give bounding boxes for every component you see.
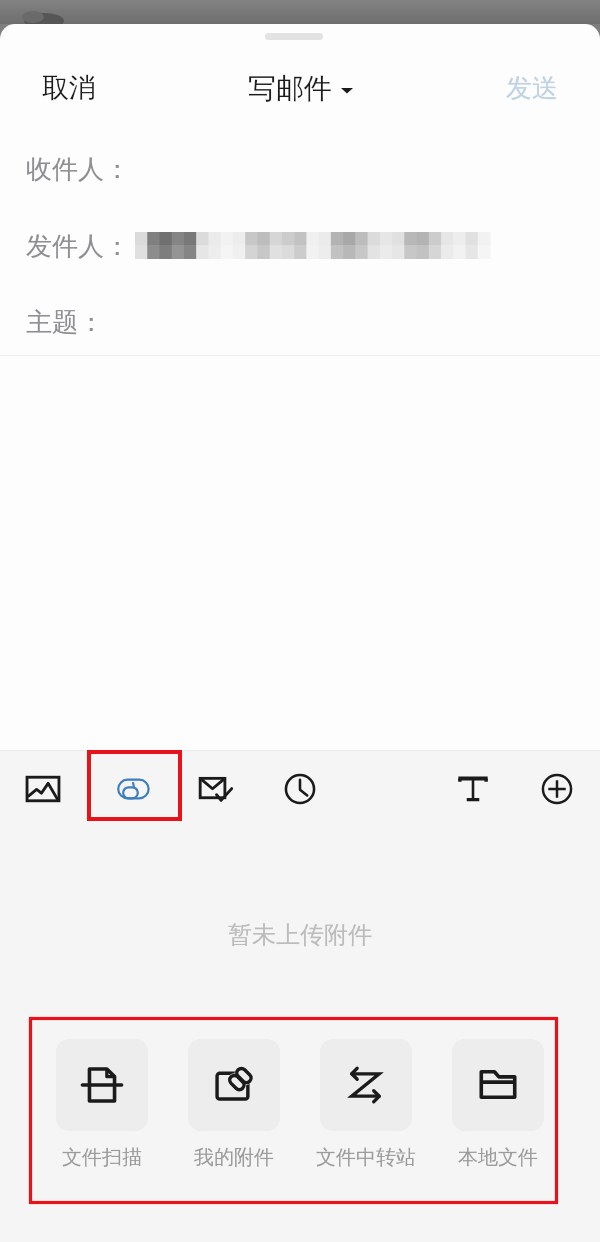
button[interactable]: 发件人： [0, 215, 600, 277]
button[interactable]: My attachments [168, 1039, 300, 1170]
staticText: 发送 [506, 72, 558, 105]
staticText: 暂未上传附件 [228, 920, 372, 948]
button[interactable]: File transfer station [300, 1039, 432, 1170]
button[interactable]: Attach file [104, 759, 164, 819]
button[interactable]: 主题： [0, 291, 600, 353]
button[interactable]: Insert image [13, 759, 73, 819]
staticText: 我的附件 [194, 1145, 274, 1170]
button[interactable]: Text format [443, 759, 503, 819]
staticText: 发件人： [26, 230, 130, 263]
button[interactable]: Add more [527, 759, 587, 819]
button[interactable]: Local files [432, 1039, 564, 1170]
button[interactable]: Read receipt [185, 759, 245, 819]
staticText: 文件中转站 [316, 1145, 416, 1170]
staticText: 写邮件 [248, 71, 332, 106]
staticText: 主题： [26, 306, 104, 339]
button[interactable]: 收件人： [0, 138, 600, 200]
staticText: 文件扫描 [62, 1145, 142, 1170]
button[interactable]: 发送 [492, 62, 572, 115]
staticText: 收件人： [26, 153, 130, 186]
button[interactable]: Scan document [36, 1039, 168, 1170]
button[interactable]: 写邮件 [238, 61, 363, 116]
staticText: 本地文件 [458, 1145, 538, 1170]
button[interactable]: 取消 [28, 61, 110, 115]
button[interactable]: Schedule send [270, 759, 330, 819]
staticText: 取消 [42, 71, 96, 105]
